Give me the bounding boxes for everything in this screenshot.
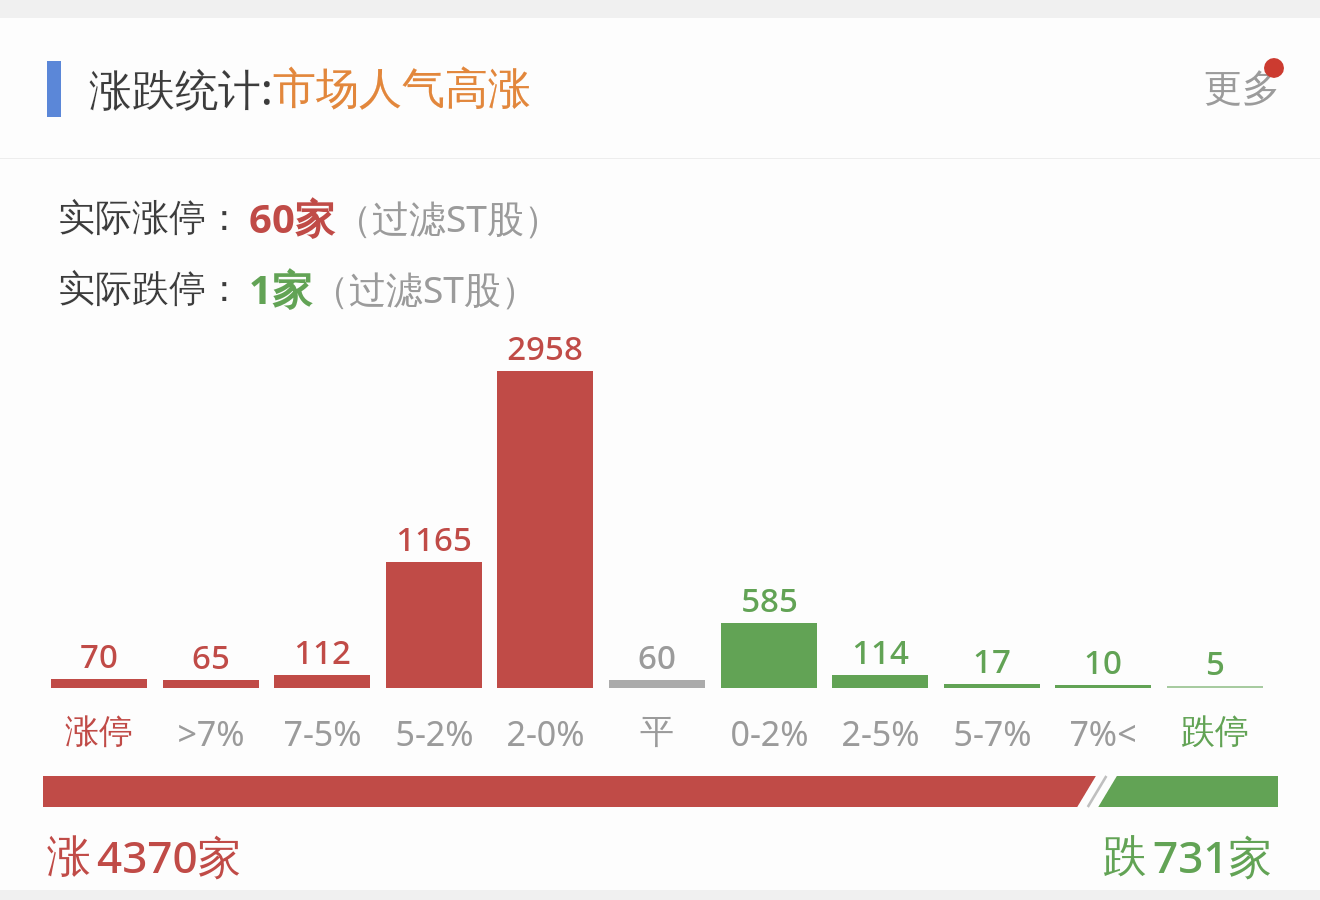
staticText: （过滤ST股） [312, 263, 538, 314]
button[interactable]: 涨跌统计: [47, 59, 531, 118]
button[interactable]: 7%< [1055, 710, 1151, 756]
staticText: 17 [973, 638, 1011, 683]
button[interactable]: 2-0% [497, 710, 593, 756]
button[interactable]: 5-7% [944, 710, 1040, 756]
staticText: >7% [177, 710, 245, 756]
staticText: 5-7% [953, 710, 1032, 756]
staticText: 114 [852, 629, 909, 674]
staticText: 实际跌停： [58, 265, 243, 312]
staticText: 65 [192, 634, 230, 679]
staticText: 1165 [396, 516, 472, 561]
staticText: 70 [80, 633, 118, 678]
staticText: 4370家 [97, 826, 242, 886]
button[interactable]: 2-5% [832, 710, 928, 756]
staticText: 7%< [1069, 710, 1137, 756]
staticText: 2-5% [841, 710, 920, 756]
staticText: 涨 [47, 829, 91, 884]
staticText: 1家 [249, 261, 312, 316]
staticText: 112 [294, 629, 351, 674]
staticText: 585 [741, 577, 798, 622]
button[interactable]: 涨 [47, 826, 242, 886]
staticText: 更多 [1204, 64, 1280, 112]
staticText: 5 [1206, 640, 1225, 685]
staticText: 2-0% [506, 710, 585, 756]
button[interactable]: 跌 [1103, 826, 1273, 886]
button[interactable]: 0-2% [721, 710, 817, 756]
staticText: 涨停 [65, 710, 133, 753]
button[interactable]: 平 [609, 710, 705, 753]
button[interactable]: 涨停 [51, 710, 147, 753]
staticText: 60家 [249, 190, 335, 245]
button[interactable]: 5-2% [386, 710, 482, 756]
staticText: （过滤ST股） [335, 192, 561, 243]
staticText: 跌 [1103, 829, 1147, 884]
staticText: 7-5% [283, 710, 362, 756]
staticText: 2958 [507, 325, 583, 370]
staticText: 731家 [1153, 826, 1273, 886]
button[interactable]: 7-5% [274, 710, 370, 756]
button[interactable]: 更多 [1198, 58, 1286, 118]
button[interactable]: 跌停 [1167, 710, 1263, 753]
button[interactable]: >7% [163, 710, 259, 756]
staticText: 5-2% [395, 710, 474, 756]
staticText: 跌停 [1181, 710, 1249, 753]
staticText: 平 [640, 710, 674, 753]
staticText: 10 [1084, 639, 1122, 684]
staticText: 60 [638, 634, 676, 679]
staticText: 市场人气高涨 [273, 62, 531, 116]
staticText: 涨跌统计: [89, 59, 273, 118]
staticText: 实际涨停： [58, 194, 243, 241]
staticText: 0-2% [730, 710, 809, 756]
